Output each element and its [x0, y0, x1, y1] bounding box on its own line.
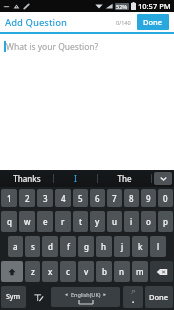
button[interactable]: b	[96, 261, 112, 282]
button[interactable]: 7	[107, 189, 122, 207]
staticText: l	[157, 241, 160, 252]
button[interactable]: o	[141, 211, 156, 232]
button[interactable]: r	[55, 211, 71, 232]
button[interactable]: What is your Question?	[0, 34, 174, 170]
button[interactable]: Handwriting input	[28, 286, 48, 308]
staticText: 9	[146, 193, 151, 204]
staticText: Done	[143, 17, 163, 27]
button[interactable]: 3	[37, 189, 53, 207]
button[interactable]: n	[114, 261, 130, 282]
button[interactable]: i	[124, 211, 139, 232]
button[interactable]: Space	[51, 287, 120, 307]
staticText: Thanks	[13, 173, 41, 184]
button[interactable]: Backspace	[150, 261, 173, 282]
staticText: 6	[95, 193, 100, 204]
button[interactable]: k	[132, 236, 148, 257]
staticText: 4	[61, 193, 66, 204]
staticText: n	[119, 266, 125, 277]
staticText: What is your Question?	[6, 41, 99, 53]
button[interactable]: q	[1, 211, 17, 232]
button[interactable]: v	[78, 261, 94, 282]
button[interactable]: 5	[73, 189, 88, 207]
button[interactable]: z	[25, 261, 40, 282]
button[interactable]: Expand suggestions	[154, 172, 172, 185]
staticText: m	[136, 266, 144, 277]
staticText: Add Question	[5, 16, 67, 29]
staticText: 7	[112, 193, 117, 204]
button[interactable]: g	[78, 236, 94, 257]
staticText: 52%	[116, 3, 128, 10]
button[interactable]: p	[158, 211, 173, 232]
button[interactable]: Thanks	[0, 170, 53, 187]
button[interactable]: x	[42, 261, 58, 282]
staticText: 1	[7, 193, 12, 204]
staticText: Done	[149, 292, 169, 302]
staticText: u	[112, 216, 118, 227]
button[interactable]: j	[114, 236, 130, 257]
button[interactable]: f	[60, 236, 76, 257]
button[interactable]: 2	[19, 189, 35, 207]
staticText: ◂	[65, 291, 71, 298]
button[interactable]: h	[96, 236, 112, 257]
staticText: x	[48, 266, 53, 277]
staticText: r	[61, 216, 65, 227]
button[interactable]: t	[73, 211, 88, 232]
button[interactable]: Shift	[1, 261, 23, 282]
staticText: i	[130, 216, 133, 227]
button[interactable]: 9	[141, 189, 156, 207]
staticText: s	[31, 241, 35, 252]
button[interactable]: w	[19, 211, 35, 232]
staticText: I	[74, 173, 77, 184]
button[interactable]: m	[132, 261, 148, 282]
staticText: .	[132, 294, 135, 305]
staticText: 5	[78, 193, 83, 204]
staticText: g	[84, 241, 89, 252]
staticText: Sym	[6, 292, 21, 302]
staticText: ▸	[101, 291, 107, 298]
button[interactable]: 0	[158, 189, 173, 207]
button[interactable]: Period	[123, 286, 143, 308]
staticText: 0/140	[116, 19, 131, 26]
staticText: p	[163, 216, 168, 227]
staticText: j	[121, 241, 124, 252]
staticText: v	[84, 266, 89, 277]
button[interactable]: 6	[90, 189, 105, 207]
staticText: English(UK)	[71, 291, 101, 298]
staticText: k	[138, 241, 143, 252]
staticText: z	[31, 266, 35, 277]
button[interactable]: I	[54, 170, 97, 187]
button[interactable]: s	[25, 236, 40, 257]
button[interactable]: e	[37, 211, 53, 232]
button[interactable]: c	[60, 261, 76, 282]
button[interactable]: 8	[124, 189, 139, 207]
staticText: h	[101, 241, 107, 252]
staticText: 0	[163, 193, 168, 204]
button[interactable]: The	[98, 170, 151, 187]
staticText: 2	[25, 193, 30, 204]
button[interactable]: 4	[55, 189, 71, 207]
staticText: d	[48, 241, 53, 252]
button[interactable]: Sym	[1, 286, 26, 308]
staticText: q	[7, 216, 12, 227]
staticText: ,!?	[131, 289, 135, 294]
button[interactable]: Done	[137, 14, 169, 30]
button[interactable]: 1	[1, 189, 17, 207]
button[interactable]: y	[90, 211, 105, 232]
staticText: w	[24, 216, 31, 227]
staticText: 10:57 PM	[138, 1, 171, 11]
staticText: y	[95, 216, 100, 227]
button[interactable]: Done	[145, 286, 173, 308]
staticText: o	[146, 216, 151, 227]
staticText: e	[43, 216, 48, 227]
button[interactable]: d	[42, 236, 58, 257]
staticText: t	[79, 216, 83, 227]
staticText: b	[102, 266, 107, 277]
button[interactable]: l	[150, 236, 166, 257]
staticText: c	[66, 266, 70, 277]
staticText: The	[117, 173, 132, 184]
button[interactable]: u	[107, 211, 122, 232]
button[interactable]: a	[8, 236, 23, 257]
staticText: 3	[43, 193, 48, 204]
staticText: f	[67, 241, 70, 252]
staticText: 8	[129, 193, 134, 204]
